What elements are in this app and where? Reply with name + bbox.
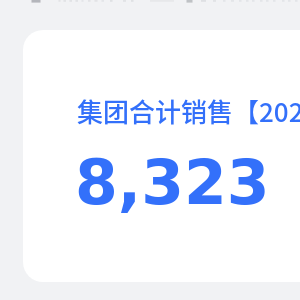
button[interactable]: 集团合计销售【2025年】 [23, 30, 300, 282]
staticText: 集团合计销售【2025年】 [77, 92, 300, 130]
staticText: 8,323 [75, 147, 270, 219]
